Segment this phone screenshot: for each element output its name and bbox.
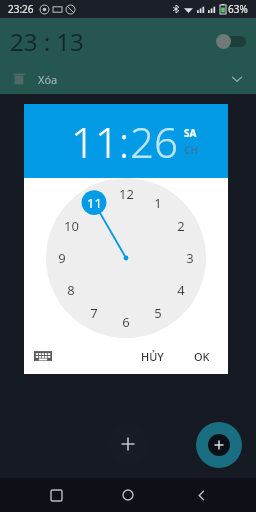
- staticText: HỦY: [141, 349, 164, 364]
- button[interactable]: SA: [184, 126, 197, 140]
- button[interactable]: Home: [111, 478, 145, 512]
- button[interactable]: Add: [196, 422, 242, 468]
- staticText: 12: [119, 185, 134, 203]
- button[interactable]: 11: [71, 113, 119, 170]
- button[interactable]: 26: [130, 113, 178, 170]
- staticText: 10: [64, 217, 79, 235]
- button[interactable]: Keyboard input: [34, 349, 52, 363]
- staticText: 11: [87, 194, 102, 212]
- button[interactable]: CH: [184, 143, 199, 157]
- button[interactable]: Delete: [10, 70, 28, 88]
- staticText: 63%: [228, 2, 248, 16]
- button[interactable]: 1: [46, 178, 206, 338]
- staticText: 5: [154, 304, 162, 322]
- staticText: 6: [122, 313, 130, 331]
- staticText: 8: [67, 281, 75, 299]
- staticText: 1: [154, 194, 162, 212]
- staticText: 2: [177, 217, 185, 235]
- staticText: 9: [58, 249, 66, 267]
- staticText: OK: [194, 349, 210, 364]
- button[interactable]: OK: [188, 349, 216, 364]
- button[interactable]: [216, 33, 246, 49]
- staticText: 4: [177, 281, 185, 299]
- button[interactable]: Recents: [39, 478, 73, 512]
- button[interactable]: Back: [184, 478, 218, 512]
- button[interactable]: Add alarm: [108, 424, 148, 464]
- staticText: Xóa: [38, 72, 58, 87]
- staticText: 3: [186, 249, 194, 267]
- staticText: 23 : 13: [10, 25, 84, 58]
- staticText: 7: [90, 304, 98, 322]
- staticText: :: [119, 113, 130, 170]
- button[interactable]: Expand: [228, 70, 246, 88]
- button[interactable]: HỦY: [135, 349, 170, 364]
- staticText: 23:26: [8, 2, 34, 16]
